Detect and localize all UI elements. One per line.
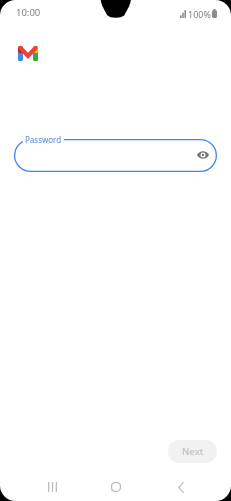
button[interactable]: Next [168,440,217,463]
button[interactable]: Home [94,474,138,500]
staticText: Next [182,445,204,458]
button[interactable]: Recents [30,474,74,500]
staticText: 100% [188,8,211,20]
button[interactable]: Show password [192,144,214,166]
button[interactable]: Back [159,474,203,500]
staticText: 10:00 [16,6,41,19]
staticText: Password [25,134,62,145]
